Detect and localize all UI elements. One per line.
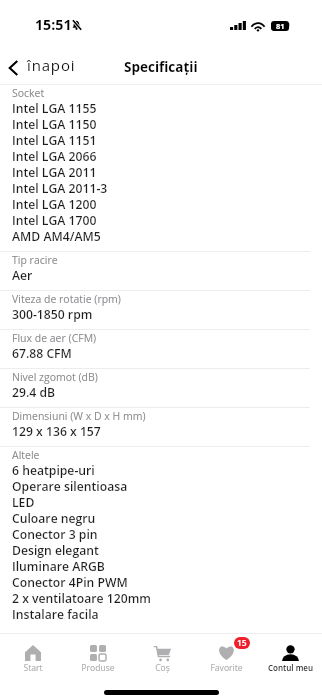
staticText: 29.4 dB — [12, 384, 56, 400]
staticText: 300-1850 rpm — [12, 306, 93, 322]
button[interactable]: înapoi — [0, 49, 84, 81]
staticText: Coș — [155, 662, 170, 674]
staticText: 6 heatpipe-uri — [12, 462, 95, 478]
staticText: Instalare facila — [12, 606, 99, 622]
staticText: Intel LGA 1150 — [12, 116, 97, 132]
staticText: Socket — [12, 86, 45, 100]
staticText: 15:51 — [35, 15, 72, 34]
staticText: Contul meu — [268, 662, 313, 673]
staticText: 15 — [237, 637, 247, 649]
staticText: Specificații — [124, 58, 198, 76]
staticText: Produse — [81, 662, 115, 674]
staticText: 2 x ventilatoare 120mm — [12, 590, 151, 606]
button[interactable]: Coș — [130, 634, 194, 674]
staticText: LED — [12, 494, 35, 510]
staticText: Tip racire — [12, 253, 58, 267]
staticText: Flux de aer (CFM) — [12, 331, 97, 345]
staticText: înapoi — [27, 55, 76, 75]
staticText: Intel LGA 1200 — [12, 196, 97, 212]
button[interactable]: Start — [0, 634, 65, 674]
staticText: Culoare negru — [12, 510, 96, 526]
staticText: 81 — [276, 21, 285, 31]
staticText: Start — [23, 662, 43, 674]
staticText: Nivel zgomot (dB) — [12, 370, 98, 384]
staticText: Intel LGA 1700 — [12, 212, 97, 228]
staticText: Intel LGA 1151 — [12, 132, 97, 148]
button[interactable]: 15 — [194, 634, 258, 674]
button[interactable]: Produse — [65, 634, 130, 674]
staticText: Aer — [12, 267, 33, 283]
staticText: Intel LGA 2011-3 — [12, 180, 108, 196]
staticText: Intel LGA 1155 — [12, 100, 97, 116]
staticText: Altele — [12, 448, 40, 462]
staticText: Conector 3 pin — [12, 526, 98, 542]
staticText: Conector 4Pin PWM — [12, 574, 128, 590]
staticText: Operare silentioasa — [12, 478, 128, 494]
staticText: AMD AM4/AM5 — [12, 228, 101, 244]
staticText: 67.88 CFM — [12, 345, 72, 361]
staticText: Viteza de rotatie (rpm) — [12, 292, 121, 306]
staticText: Intel LGA 2066 — [12, 148, 97, 164]
button[interactable]: Contul meu — [258, 634, 322, 673]
staticText: Intel LGA 2011 — [12, 164, 97, 180]
staticText: 129 x 136 x 157 — [12, 423, 101, 439]
staticText: Design elegant — [12, 542, 99, 558]
staticText: Dimensiuni (W x D x H mm) — [12, 409, 146, 423]
staticText: Iluminare ARGB — [12, 558, 105, 574]
staticText: Favorite — [210, 662, 243, 674]
